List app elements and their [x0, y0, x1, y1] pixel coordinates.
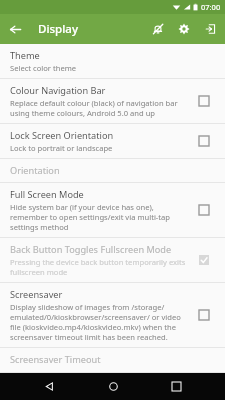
- staticText: Display: [38, 21, 78, 37]
- button[interactable]: Screensaver: [0, 283, 225, 347]
- button[interactable]: Recents: [161, 373, 191, 400]
- button[interactable]: Alarm off: [145, 16, 171, 42]
- button[interactable]: Orientation: [0, 159, 225, 182]
- staticText: Screensaver: [10, 288, 63, 301]
- button[interactable]: Toggle: [197, 203, 211, 217]
- button[interactable]: Exit: [197, 16, 223, 42]
- button[interactable]: Toggle: [197, 308, 211, 322]
- button[interactable]: Back: [0, 14, 30, 44]
- button[interactable]: Settings: [171, 16, 197, 42]
- staticText: Colour Navigation Bar: [10, 84, 106, 97]
- button[interactable]: Theme: [0, 44, 225, 78]
- button[interactable]: Back Button Toggles Fullscreen Mode: [0, 238, 225, 282]
- button[interactable]: Back: [34, 373, 64, 400]
- staticText: Theme: [10, 49, 40, 62]
- staticText: Screensaver Timeout: [10, 353, 101, 366]
- staticText: Lock Screen Orientation: [10, 129, 114, 142]
- staticText: Display slideshow of images from /storag…: [10, 302, 191, 342]
- staticText: Lock to portrait or landscape: [10, 143, 113, 153]
- button[interactable]: Colour Navigation Bar: [0, 79, 225, 123]
- button[interactable]: Toggle: [197, 253, 211, 267]
- button[interactable]: Toggle: [197, 134, 211, 148]
- button[interactable]: Full Screen Mode: [0, 183, 225, 237]
- button[interactable]: Screensaver Timeout: [0, 348, 225, 372]
- button[interactable]: Lock Screen Orientation: [0, 124, 225, 158]
- staticText: 07:00: [201, 2, 221, 12]
- staticText: Replace default colour (black) of naviga…: [10, 98, 191, 118]
- staticText: Full Screen Mode: [10, 188, 84, 201]
- staticText: Pressing the device back button temporar…: [10, 257, 191, 277]
- staticText: Back Button Toggles Fullscreen Mode: [10, 243, 172, 256]
- staticText: Orientation: [10, 164, 60, 177]
- staticText: Hide system bar (if your device has one)…: [10, 202, 191, 232]
- button[interactable]: Toggle: [197, 94, 211, 108]
- button[interactable]: Home: [98, 373, 128, 400]
- staticText: Select color theme: [10, 63, 77, 73]
